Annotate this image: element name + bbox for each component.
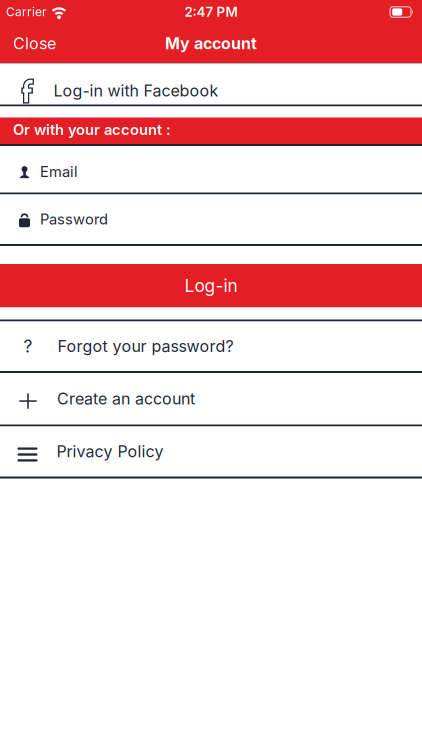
staticText: ? — [23, 336, 32, 356]
staticText: Create an account — [57, 389, 195, 408]
staticText: Log-in — [184, 275, 237, 296]
button[interactable]: Privacy Policy — [0, 426, 422, 476]
button[interactable]: Password — [0, 194, 422, 244]
staticText: 2:47 PM — [184, 4, 237, 20]
staticText: Carrier — [6, 5, 47, 19]
staticText: Or with your account : — [13, 121, 171, 138]
staticText: Forgot your password? — [57, 337, 233, 356]
staticText: My account — [165, 34, 257, 53]
staticText: Email — [40, 163, 78, 180]
button[interactable]: Log-in — [0, 264, 422, 307]
button[interactable]: Close — [0, 34, 56, 53]
staticText: Log-in with Facebook — [53, 81, 218, 100]
button[interactable]: Log-in with Facebook — [0, 64, 422, 104]
button[interactable]: Email — [0, 146, 422, 192]
staticText: Password — [40, 211, 108, 228]
staticText: Close — [13, 34, 56, 53]
button[interactable]: ? — [0, 321, 422, 371]
staticText: Privacy Policy — [56, 442, 163, 461]
button[interactable]: Create an account — [0, 373, 422, 424]
